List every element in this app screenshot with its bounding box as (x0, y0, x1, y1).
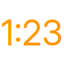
button[interactable]: Timer, 1 minute 23 seconds remaining (0, 11, 64, 55)
staticText: 1:23 (1, 12, 63, 54)
